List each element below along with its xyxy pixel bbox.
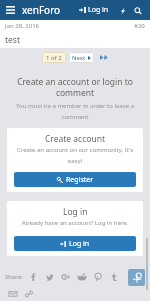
staticText: test — [5, 34, 21, 46]
button[interactable]: Copy link — [21, 286, 37, 301]
staticText: #20 — [134, 22, 145, 30]
button[interactable]: Last page — [98, 52, 109, 63]
button[interactable]: Google Plus — [58, 269, 74, 285]
button[interactable]: Twitter — [42, 269, 58, 285]
button[interactable]: Pinterest — [90, 269, 106, 285]
button[interactable]: Search — [132, 5, 143, 16]
staticText: Log in — [69, 239, 90, 249]
button[interactable]: What's new — [117, 5, 128, 16]
staticText: Next — [72, 54, 86, 62]
staticText: Log in — [63, 206, 88, 218]
staticText: Create account — [45, 133, 105, 145]
staticText: Register — [66, 175, 94, 185]
staticText: Share: — [5, 273, 23, 281]
staticText: You must be a member in order to leave a… — [14, 102, 136, 121]
button[interactable]: Facebook — [26, 269, 42, 285]
staticText: 1 of 2 — [46, 54, 62, 62]
button[interactable]: 1 of 2 — [42, 52, 66, 63]
staticText: Create an account on our community. It's… — [14, 146, 136, 165]
staticText: Create an account or login to comment — [14, 76, 136, 98]
button[interactable]: Log in — [77, 2, 111, 18]
button[interactable]: Register — [14, 172, 136, 187]
button[interactable]: More share options — [128, 269, 145, 286]
button[interactable]: Email — [5, 286, 21, 301]
staticText: Jan 28, 2016 — [5, 22, 40, 30]
button[interactable]: Log in — [14, 236, 136, 251]
button[interactable]: Tumblr — [106, 269, 122, 285]
staticText: Already have an account? Log in here. — [14, 219, 136, 227]
button[interactable]: Reddit — [74, 269, 90, 285]
button[interactable]: Menu — [2, 2, 18, 18]
staticText: Log in — [88, 5, 109, 15]
staticText: xenForo — [22, 3, 61, 17]
button[interactable]: Next — [69, 52, 94, 63]
